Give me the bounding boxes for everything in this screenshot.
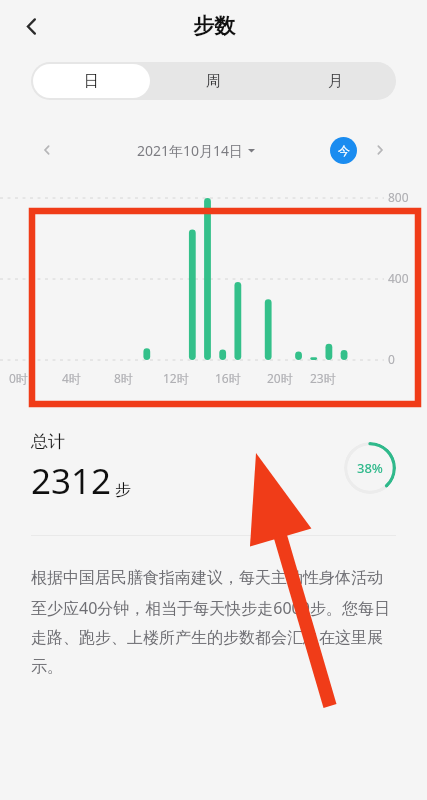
staticText: 23时 [310, 370, 336, 386]
staticText: 今 [338, 143, 350, 158]
staticText: 日 [84, 72, 99, 91]
button[interactable]: 日 [33, 64, 150, 98]
staticText: 20时 [267, 370, 293, 386]
button[interactable]: 2021年10月14日 [133, 138, 259, 163]
button[interactable]: Next [366, 136, 394, 164]
staticText: 400 [388, 270, 409, 286]
staticText: 0 [388, 351, 395, 367]
button[interactable]: Previous [33, 136, 61, 164]
staticText: 800 [388, 189, 409, 205]
button[interactable]: Back [11, 6, 51, 46]
staticText: 月 [328, 72, 343, 91]
staticText: 总计 [31, 431, 65, 452]
staticText: 根据中国居民膳食指南建议，每天主动性身体活动至少应40分钟，相当于每天快步走60… [31, 568, 396, 676]
staticText: 16时 [215, 370, 241, 386]
button[interactable]: 周 [154, 64, 272, 98]
button[interactable]: 38% [344, 442, 396, 494]
staticText: 周 [206, 72, 221, 91]
staticText: 8时 [114, 370, 133, 386]
button[interactable]: 月 [276, 64, 394, 98]
staticText: 步 [115, 480, 131, 500]
button[interactable]: 今 [330, 137, 357, 164]
staticText: 0时 [9, 370, 28, 386]
staticText: 38% [357, 459, 383, 477]
staticText: 步数 [193, 13, 235, 39]
staticText: 12时 [163, 370, 189, 386]
staticText: 2312 [31, 457, 112, 505]
staticText: 2021年10月14日 [137, 141, 244, 160]
staticText: 4时 [62, 370, 81, 386]
